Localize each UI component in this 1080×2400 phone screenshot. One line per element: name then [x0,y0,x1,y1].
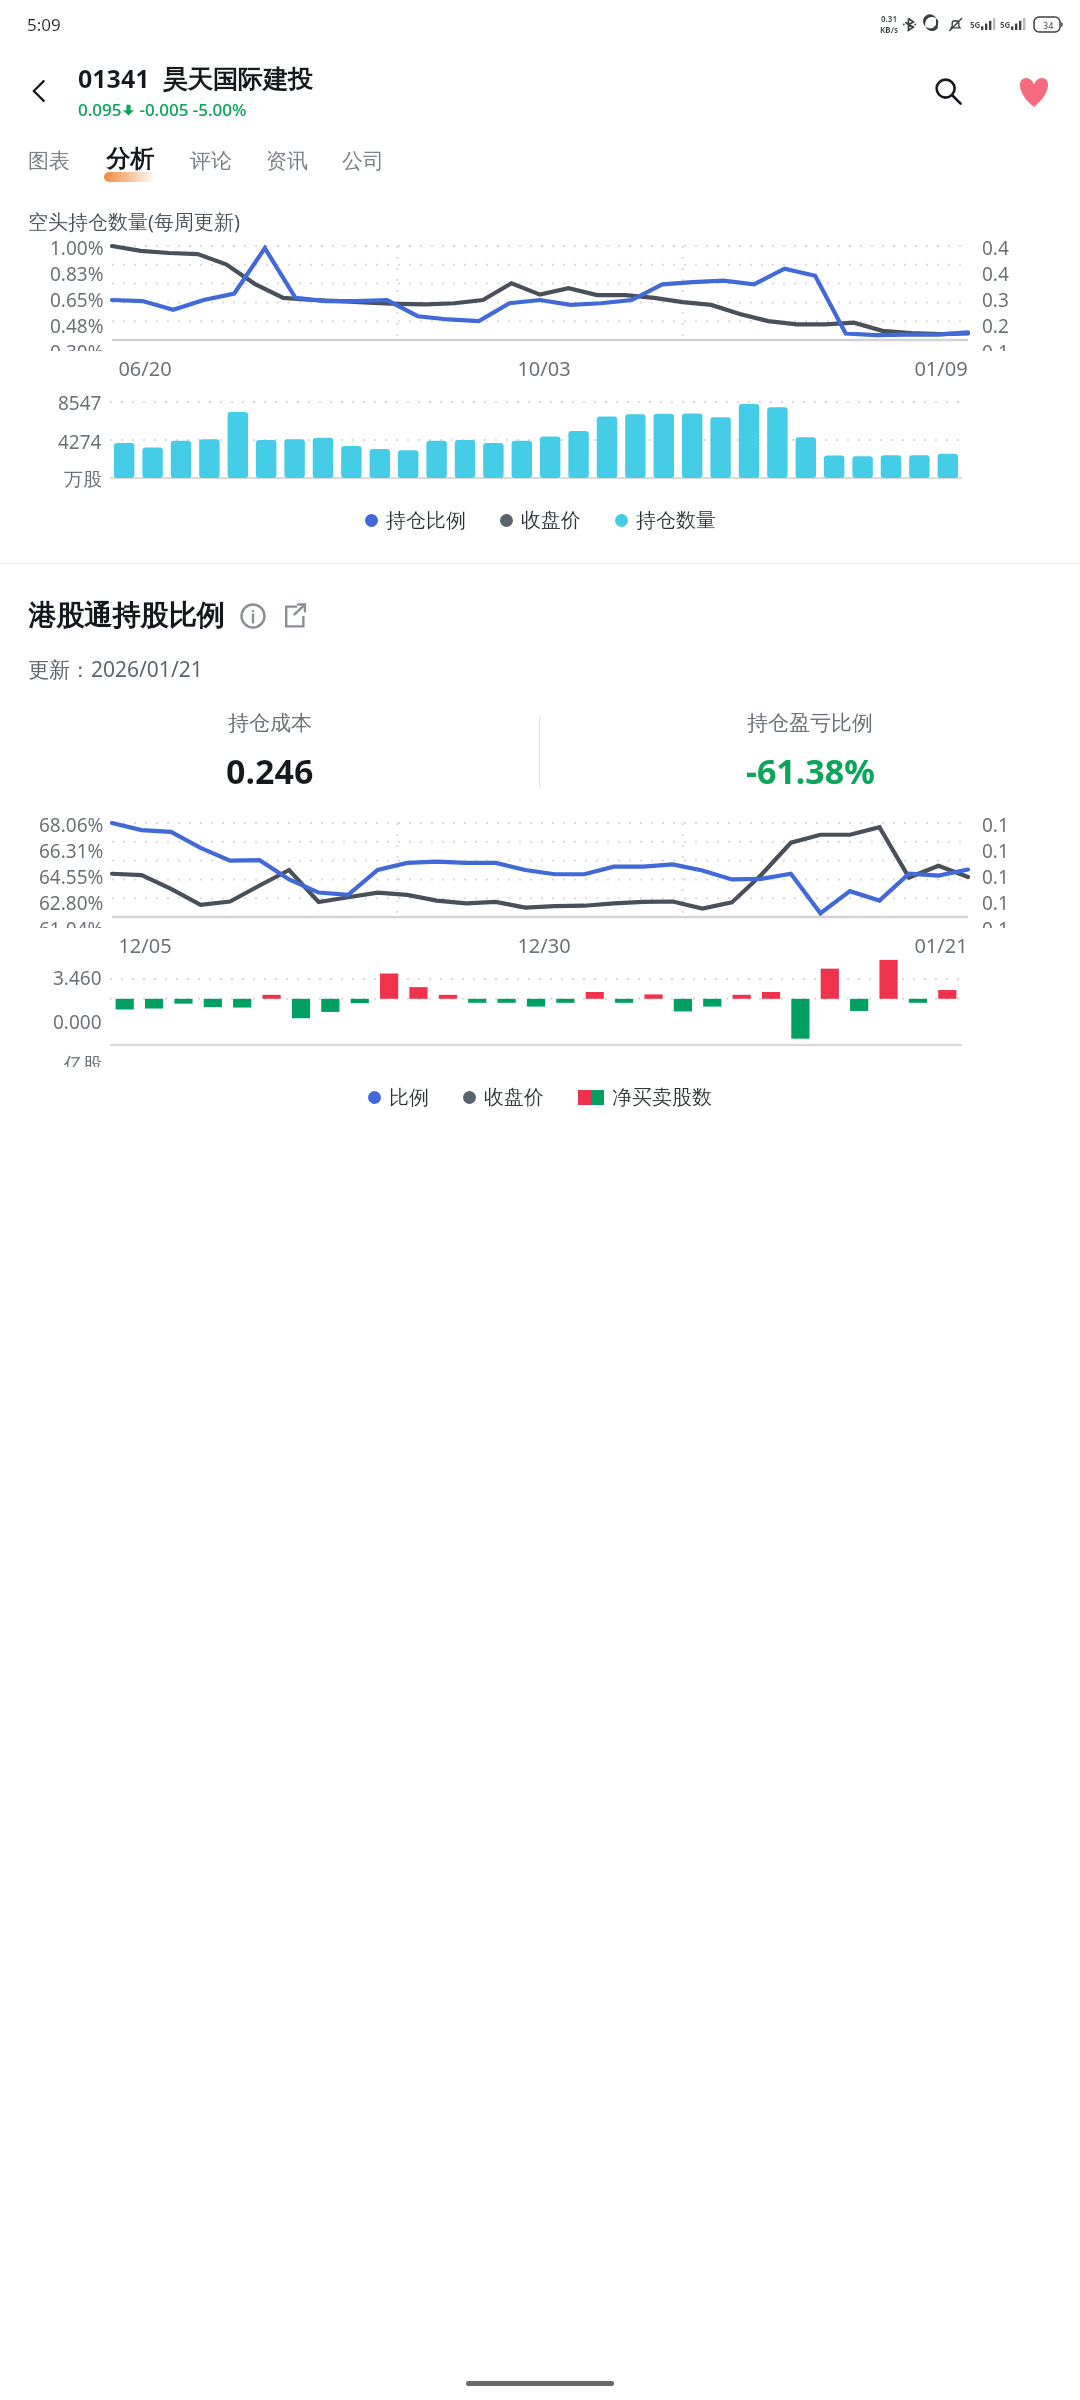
button[interactable]: Favorite [988,48,1080,134]
staticText: 64.55% [39,864,104,890]
staticText: -61.38% [746,748,875,794]
button[interactable]: Info [238,601,268,631]
staticText: 持仓盈亏比例 [747,710,873,736]
staticText: 66.31% [39,838,104,864]
staticText: 0.1 [982,812,1009,838]
staticText: 68.06% [39,812,104,838]
staticText: 持仓成本 [228,710,312,736]
staticText: KB/s [880,24,898,35]
button[interactable]: 分析 [104,134,156,184]
button[interactable]: 图表 [28,138,70,184]
staticText: -0.005 -5.00% [135,98,247,121]
staticText: 8547 [58,390,102,416]
staticText: 61.04% [39,916,104,928]
staticText: 0.1 [982,339,1009,351]
staticText: 净买卖股数 [612,1085,712,1110]
staticText: 5:09 [27,13,61,36]
button[interactable]: 公司 [342,138,384,184]
staticText: 0.4 [982,235,1009,261]
staticText: 0.48% [50,313,104,339]
staticText: 港股通持股比例 [28,598,224,633]
staticText: 0.1 [982,838,1009,864]
staticText: 0.2 [982,313,1009,339]
staticText: 0.1 [982,890,1009,916]
staticText: 亿股 [64,1053,102,1067]
staticText: 1.00% [50,235,104,261]
staticText: 0.31 [881,13,897,24]
staticText: 12/05 [118,932,172,959]
staticText: 0.30% [50,339,104,351]
staticText: 分析 [106,144,154,174]
button[interactable]: Back [0,48,78,134]
staticText: 06/20 [118,355,172,382]
staticText: 0.000 [53,1009,102,1035]
button[interactable]: 评论 [190,138,232,184]
staticText: 持仓数量 [636,508,716,533]
staticText: 0.65% [50,287,104,313]
staticText: 12/30 [517,932,571,959]
button[interactable]: Search [908,48,988,134]
staticText: 5G [970,19,981,30]
staticText: 0.4 [982,261,1009,287]
staticText: 空头持仓数量(每周更新) [28,208,240,235]
staticText: 0.83% [50,261,104,287]
staticText: 4274 [58,429,102,455]
staticText: 万股 [64,468,102,492]
staticText: 评论 [190,148,232,174]
staticText: 收盘价 [484,1085,544,1110]
staticText: 01341 昊天国际建投 [78,61,313,95]
staticText: 图表 [28,148,70,174]
staticText: 01/21 [914,932,968,959]
button[interactable]: Share [278,600,310,632]
staticText: 10/03 [517,355,571,382]
staticText: 3.460 [53,965,102,991]
button[interactable]: 资讯 [266,138,308,184]
staticText: 01/09 [914,355,968,382]
staticText: 比例 [389,1085,429,1110]
staticText: 0.246 [226,748,314,794]
staticText: 0.1 [982,864,1009,890]
staticText: 收盘价 [521,508,581,533]
staticText: 资讯 [266,148,308,174]
staticText: 更新：2026/01/21 [28,655,203,684]
staticText: 5G [1000,19,1011,30]
staticText: 62.80% [39,890,104,916]
staticText: 持仓比例 [386,508,466,533]
staticText: 公司 [342,148,384,174]
staticText: 0.095 [78,98,122,121]
staticText: 0.3 [982,287,1009,313]
staticText: 34 [1043,19,1054,31]
staticText: 0.1 [982,916,1009,928]
